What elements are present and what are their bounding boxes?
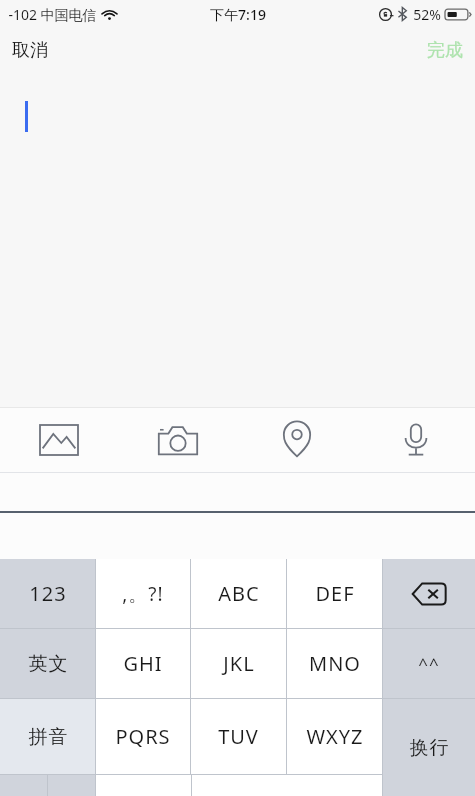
staticText: DEF bbox=[315, 580, 355, 607]
button[interactable]: Voice bbox=[356, 408, 475, 472]
staticText: ,。?! bbox=[122, 581, 164, 607]
button[interactable]: Photos bbox=[0, 408, 118, 472]
button[interactable]: 取消 bbox=[0, 28, 60, 72]
staticText: JKL bbox=[223, 650, 255, 677]
button[interactable]: Camera bbox=[118, 408, 237, 472]
button[interactable]: TUV bbox=[191, 699, 286, 774]
staticText: MNO bbox=[309, 650, 361, 677]
staticText: -102 中国电信 bbox=[8, 5, 97, 24]
staticText: 123 bbox=[29, 580, 67, 607]
staticText: 英文 bbox=[28, 652, 68, 676]
button[interactable]: 换行 bbox=[383, 699, 475, 796]
button[interactable]: DEF bbox=[287, 559, 382, 628]
staticText: 52% bbox=[413, 5, 441, 24]
staticText: ^^ bbox=[418, 652, 440, 675]
staticText: 下午7:19 bbox=[210, 5, 266, 24]
button[interactable]: 英文 bbox=[0, 629, 95, 698]
button[interactable]: MNO bbox=[287, 629, 382, 698]
button[interactable]: ^^ bbox=[383, 629, 475, 698]
button[interactable]: Location bbox=[237, 408, 356, 472]
staticText: 拼音 bbox=[28, 725, 68, 749]
staticText: 换行 bbox=[409, 736, 449, 760]
button[interactable]: Backspace bbox=[383, 559, 475, 628]
button[interactable]: JKL bbox=[191, 629, 286, 698]
button[interactable]: WXYZ bbox=[287, 699, 382, 774]
button[interactable]: ,。?! bbox=[96, 559, 190, 628]
button[interactable]: 完成 bbox=[415, 28, 475, 72]
button[interactable]: 123 bbox=[0, 559, 95, 628]
staticText: ABC bbox=[218, 580, 260, 607]
button[interactable]: GHI bbox=[96, 629, 190, 698]
button[interactable]: PQRS bbox=[96, 699, 190, 774]
staticText: PQRS bbox=[115, 723, 171, 750]
staticText: 完成 bbox=[427, 39, 463, 62]
staticText: TUV bbox=[218, 723, 259, 750]
button[interactable]: ABC bbox=[191, 559, 286, 628]
button[interactable]: 拼音 bbox=[0, 699, 95, 774]
staticText: 取消 bbox=[12, 39, 48, 62]
staticText: GHI bbox=[123, 650, 163, 677]
staticText: WXYZ bbox=[306, 723, 364, 750]
